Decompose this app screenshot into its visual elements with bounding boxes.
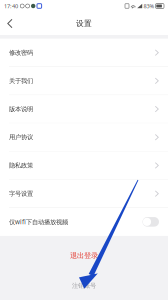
staticText: 仅wifi下自动播放视频 [9, 218, 68, 226]
staticText: 17:40 [4, 2, 18, 10]
button[interactable]: 注销账号 [0, 280, 168, 292]
staticText: 隐私政策 [9, 161, 33, 169]
staticText: 用户协议 [9, 133, 33, 141]
button[interactable]: 用户协议 [0, 123, 168, 151]
button[interactable]: 修改密码 [0, 39, 168, 66]
staticText: 注销账号 [72, 282, 96, 290]
button[interactable]: 版本说明 [0, 95, 168, 123]
staticText: 关于我们 [9, 77, 33, 85]
staticText: 字号设置 [9, 190, 33, 198]
button[interactable]: 字号设置 [0, 180, 168, 207]
button[interactable]: 退出登录 [0, 250, 168, 262]
button[interactable]: 隐私政策 [0, 152, 168, 179]
button[interactable]: 关于我们 [0, 67, 168, 95]
button[interactable]: 返回 [0, 12, 26, 35]
staticText: 83% [143, 2, 154, 10]
staticText: 设置 [76, 19, 92, 28]
button[interactable]: 仅wifi下自动播放视频 [0, 208, 168, 236]
staticText: 修改密码 [9, 49, 33, 57]
staticText: 退出登录 [70, 251, 98, 260]
staticText: 版本说明 [9, 105, 33, 113]
